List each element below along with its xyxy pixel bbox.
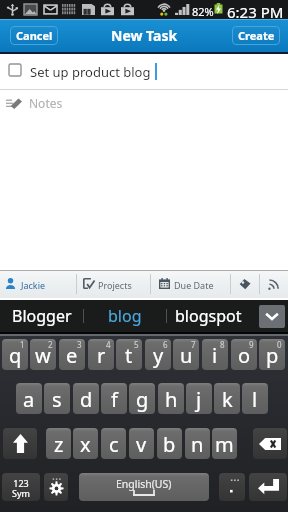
- staticText: Set up product blog: [30, 63, 151, 81]
- button[interactable]: z: [46, 428, 71, 459]
- button[interactable]: Space: [79, 473, 209, 501]
- staticText: 6: [163, 339, 168, 350]
- button[interactable]: More suggestions: [259, 305, 285, 328]
- staticText: 123 Sym: [12, 477, 30, 499]
- staticText: r: [97, 342, 106, 369]
- button[interactable]: m: [212, 428, 237, 459]
- staticText: c: [109, 431, 119, 458]
- button[interactable]: g: [129, 383, 155, 414]
- staticText: 4: [106, 339, 111, 350]
- button[interactable]: w: [30, 339, 56, 370]
- staticText: Blogger: [12, 305, 72, 327]
- button[interactable]: blog: [83, 300, 166, 332]
- staticText: Cancel: [16, 28, 53, 43]
- button[interactable]: n: [185, 428, 210, 459]
- button[interactable]: d: [73, 383, 99, 414]
- staticText: New Task: [111, 26, 178, 45]
- button[interactable]: Shift: [3, 428, 37, 459]
- staticText: i: [212, 342, 218, 369]
- button[interactable]: c: [101, 428, 126, 459]
- staticText: n: [191, 431, 204, 458]
- staticText: 2: [48, 339, 53, 350]
- button[interactable]: l: [242, 383, 268, 414]
- button[interactable]: v: [129, 428, 154, 459]
- staticText: blogspot: [175, 305, 242, 327]
- staticText: h: [165, 386, 178, 413]
- button[interactable]: Cancel: [10, 26, 58, 45]
- staticText: a: [23, 386, 35, 413]
- staticText: w: [35, 342, 51, 369]
- button[interactable]: r: [88, 339, 114, 370]
- staticText: 7: [191, 339, 196, 350]
- staticText: y: [153, 342, 164, 369]
- staticText: Projects: [98, 279, 132, 291]
- button[interactable]: y: [145, 339, 171, 370]
- staticText: blog: [108, 305, 142, 327]
- button[interactable]: j: [186, 383, 212, 414]
- staticText: p: [266, 342, 279, 369]
- button[interactable]: Tag: [230, 270, 259, 298]
- button[interactable]: o: [231, 339, 257, 370]
- staticText: k: [222, 386, 233, 413]
- staticText: f: [111, 386, 118, 413]
- staticText: l: [252, 386, 258, 413]
- button[interactable]: Set up product blog: [0, 54, 288, 89]
- staticText: z: [54, 431, 64, 458]
- staticText: d: [80, 386, 93, 413]
- staticText: u: [180, 342, 193, 369]
- button[interactable]: x: [73, 428, 98, 459]
- button[interactable]: Notes: [0, 90, 288, 116]
- button[interactable]: Period: [219, 473, 245, 501]
- button[interactable]: Feed: [259, 270, 288, 298]
- button[interactable]: q: [2, 339, 28, 370]
- button[interactable]: e: [59, 339, 85, 370]
- staticText: Jackie: [21, 279, 46, 291]
- button[interactable]: Jackie: [0, 270, 76, 298]
- button[interactable]: h: [158, 383, 184, 414]
- button[interactable]: s: [44, 383, 70, 414]
- button[interactable]: p: [259, 339, 285, 370]
- staticText: 0: [277, 339, 282, 350]
- button[interactable]: b: [157, 428, 182, 459]
- staticText: b: [163, 431, 176, 458]
- button[interactable]: Due Date: [150, 270, 230, 298]
- staticText: x: [80, 431, 91, 458]
- staticText: Create: [238, 28, 275, 43]
- staticText: m: [215, 431, 234, 458]
- button[interactable]: 123 Sym: [2, 473, 40, 501]
- button[interactable]: Create: [232, 26, 280, 45]
- staticText: 6:23 PM: [227, 2, 284, 21]
- button[interactable]: t: [116, 339, 142, 370]
- staticText: 82%: [192, 4, 214, 19]
- button[interactable]: a: [16, 383, 42, 414]
- staticText: v: [136, 431, 147, 458]
- button[interactable]: Settings: [44, 473, 68, 501]
- staticText: English(US): [116, 477, 172, 491]
- staticText: g: [136, 386, 149, 413]
- button[interactable]: f: [101, 383, 127, 414]
- staticText: o: [238, 342, 251, 369]
- button[interactable]: Blogger: [0, 300, 83, 332]
- button[interactable]: Projects: [76, 270, 150, 298]
- button[interactable]: u: [173, 339, 199, 370]
- staticText: 3: [77, 339, 82, 350]
- staticText: Due Date: [174, 279, 214, 291]
- staticText: t: [125, 342, 133, 369]
- staticText: j: [196, 386, 202, 413]
- button[interactable]: k: [214, 383, 240, 414]
- button[interactable]: i: [202, 339, 228, 370]
- staticText: 9: [249, 339, 254, 350]
- staticText: 8: [220, 339, 225, 350]
- button[interactable]: Backspace: [253, 428, 287, 459]
- staticText: Notes: [29, 95, 63, 111]
- staticText: e: [66, 342, 78, 369]
- button[interactable]: Enter: [249, 473, 287, 501]
- staticText: s: [52, 386, 62, 413]
- button[interactable]: blogspot: [166, 300, 250, 332]
- staticText: q: [9, 342, 22, 369]
- staticText: 5: [134, 339, 139, 350]
- staticText: 1: [20, 339, 25, 350]
